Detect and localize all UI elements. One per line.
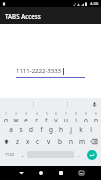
button[interactable]: n	[65, 137, 76, 146]
staticText: x	[26, 137, 30, 146]
button[interactable]: ,	[18, 148, 27, 161]
button[interactable]: g	[46, 125, 56, 134]
button[interactable]: 0	[91, 111, 101, 122]
staticText: q	[4, 116, 8, 122]
button[interactable]: 3	[21, 111, 31, 122]
button[interactable]: 1	[0, 111, 11, 122]
button[interactable]: ?123	[1, 148, 18, 161]
button[interactable]: 9	[81, 111, 91, 122]
button[interactable]: 5	[41, 111, 51, 122]
staticText: 3	[25, 111, 27, 116]
staticText: s	[19, 125, 23, 134]
button[interactable]: l	[86, 125, 96, 134]
button[interactable]: .	[74, 148, 83, 161]
button[interactable]: k	[76, 125, 86, 134]
button[interactable]: c	[33, 137, 43, 146]
button[interactable]: Recents	[51, 166, 71, 180]
button[interactable]: j	[66, 125, 76, 134]
button[interactable]: m	[76, 137, 87, 146]
staticText: 1111-2222-3333	[16, 67, 62, 75]
button[interactable]: 2	[11, 111, 21, 122]
staticText: v	[47, 137, 51, 146]
staticText: ?123	[5, 152, 15, 158]
button[interactable]: h	[56, 125, 66, 134]
staticText: 4	[36, 111, 38, 116]
staticText: 2	[15, 111, 17, 116]
button[interactable]: Back	[11, 166, 31, 180]
staticText: 5	[46, 111, 48, 116]
staticText: 7	[65, 111, 67, 116]
staticText: ,	[22, 151, 24, 158]
staticText: 0	[95, 111, 97, 116]
button[interactable]: Switch keyboard	[71, 166, 91, 180]
staticText: e	[24, 116, 28, 122]
button[interactable]: a	[5, 125, 16, 134]
staticText: n	[69, 137, 73, 146]
button[interactable]: x	[23, 137, 33, 146]
button[interactable]: 8	[71, 111, 81, 122]
staticText: p	[94, 116, 98, 122]
staticText: u	[64, 116, 68, 122]
staticText: y	[54, 116, 58, 122]
staticText: g	[49, 125, 53, 134]
button[interactable]: Shift	[0, 137, 13, 146]
button[interactable]: b	[54, 137, 65, 146]
button[interactable]: Enter	[87, 150, 97, 160]
button[interactable]: Home	[31, 166, 51, 180]
button[interactable]: 7	[61, 111, 71, 122]
button[interactable]: z	[13, 137, 23, 146]
staticText: 9	[85, 111, 87, 116]
staticText: o	[84, 116, 88, 122]
button[interactable]: d	[26, 125, 36, 134]
staticText: w	[13, 116, 19, 122]
staticText: .	[78, 151, 80, 158]
staticText: i	[75, 116, 77, 122]
staticText: b	[58, 137, 62, 146]
button[interactable]: v	[43, 137, 54, 146]
staticText: r	[35, 116, 38, 122]
staticText: c	[36, 137, 40, 146]
staticText: a	[9, 125, 13, 134]
staticText: j	[70, 125, 72, 134]
staticText: z	[16, 137, 20, 146]
button[interactable]: 1111-2222-3333	[16, 67, 85, 78]
staticText: h	[59, 125, 63, 134]
button[interactable]: Backspace	[87, 137, 101, 146]
button[interactable]: 4	[31, 111, 41, 122]
staticText: d	[29, 125, 33, 134]
staticText: t	[45, 116, 48, 122]
staticText: f	[40, 125, 43, 134]
staticText: l	[90, 125, 92, 134]
staticText: 8	[75, 111, 77, 116]
button[interactable]: f	[36, 125, 46, 134]
staticText: TABS Access	[5, 12, 41, 20]
button[interactable]: Voice input	[90, 100, 98, 108]
staticText: 6	[55, 111, 57, 116]
staticText: k	[79, 125, 83, 134]
button[interactable]: s	[16, 125, 26, 134]
staticText: m	[79, 137, 85, 146]
staticText: 4:36	[90, 1, 99, 7]
button[interactable]	[68, 98, 101, 109]
button[interactable]: 6	[51, 111, 61, 122]
staticText: 1	[5, 111, 7, 116]
